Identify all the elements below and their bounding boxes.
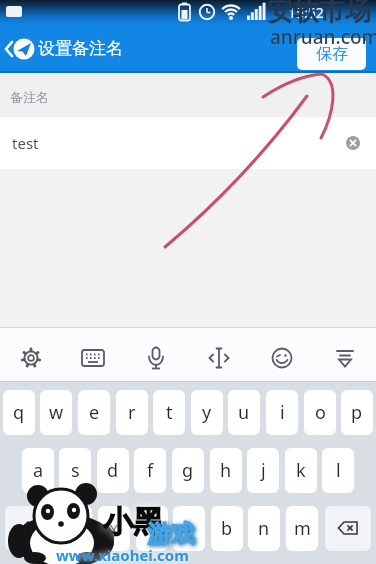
button[interactable]: c [136, 506, 168, 551]
button[interactable]: i [266, 390, 298, 435]
staticText: g [182, 458, 194, 483]
staticText: l [336, 458, 341, 483]
button[interactable]: y [191, 390, 223, 435]
staticText: p [351, 400, 363, 425]
button[interactable]: 保存 [297, 38, 366, 70]
staticText: h [220, 458, 232, 483]
button[interactable]: b [211, 506, 243, 551]
button[interactable] [325, 506, 371, 551]
staticText: www.xiaohei.com [56, 545, 189, 564]
button[interactable] [124, 327, 187, 382]
staticText: 小黑 [103, 503, 163, 541]
button[interactable] [187, 327, 250, 382]
staticText: e [89, 400, 100, 425]
staticText: x [109, 516, 119, 541]
button[interactable]: h [210, 448, 242, 493]
staticText: anruan.com [270, 24, 376, 50]
staticText: k [296, 458, 306, 483]
staticText: b [221, 516, 233, 541]
staticText: j [261, 458, 266, 483]
button[interactable]: e [78, 390, 110, 435]
button[interactable]: o [304, 390, 336, 435]
button[interactable]: g [172, 448, 204, 493]
button[interactable]: x [98, 506, 130, 551]
button[interactable]: z [60, 506, 92, 551]
button[interactable]: r [116, 390, 148, 435]
staticText: t [166, 400, 173, 425]
button[interactable] [313, 327, 376, 382]
button[interactable] [5, 506, 51, 551]
staticText: 设置备注名 [38, 38, 123, 59]
staticText: 备注名 [10, 89, 49, 105]
staticText: r [128, 400, 136, 425]
button[interactable]: k [285, 448, 317, 493]
button[interactable] [346, 136, 360, 150]
staticText: w [49, 400, 64, 425]
staticText: 15:52 [288, 3, 324, 22]
button[interactable]: f [134, 448, 166, 493]
staticText: 游戏 [147, 519, 195, 549]
staticText: o [315, 400, 326, 425]
staticText: s [71, 458, 80, 483]
staticText: c [148, 516, 157, 541]
staticText: q [13, 400, 25, 425]
button[interactable]: test [0, 117, 376, 169]
staticText: u [238, 400, 250, 425]
staticText: m [294, 516, 311, 541]
staticText: test [12, 133, 39, 153]
staticText: 保存 [316, 44, 348, 64]
staticText: i [280, 400, 285, 425]
button[interactable] [62, 327, 124, 382]
button[interactable]: 设置备注名 [0, 24, 121, 73]
button[interactable]: v [173, 506, 205, 551]
button[interactable]: u [228, 390, 260, 435]
button[interactable] [250, 327, 313, 382]
button[interactable]: d [97, 448, 129, 493]
staticText: z [72, 516, 81, 541]
staticText: n [258, 516, 270, 541]
button[interactable]: n [248, 506, 280, 551]
staticText: f [147, 458, 154, 483]
button[interactable] [0, 327, 62, 382]
staticText: v [184, 516, 194, 541]
button[interactable]: m [286, 506, 318, 551]
button[interactable]: p [341, 390, 373, 435]
button[interactable]: l [322, 448, 354, 493]
button[interactable]: j [247, 448, 279, 493]
button[interactable]: q [3, 390, 35, 435]
staticText: y [202, 400, 212, 425]
button[interactable]: w [40, 390, 72, 435]
staticText: a [33, 458, 44, 483]
button[interactable]: t [153, 390, 185, 435]
staticText: d [107, 458, 119, 483]
button[interactable]: a [22, 448, 54, 493]
button[interactable]: s [59, 448, 91, 493]
staticText: 安软市场 [267, 0, 371, 28]
